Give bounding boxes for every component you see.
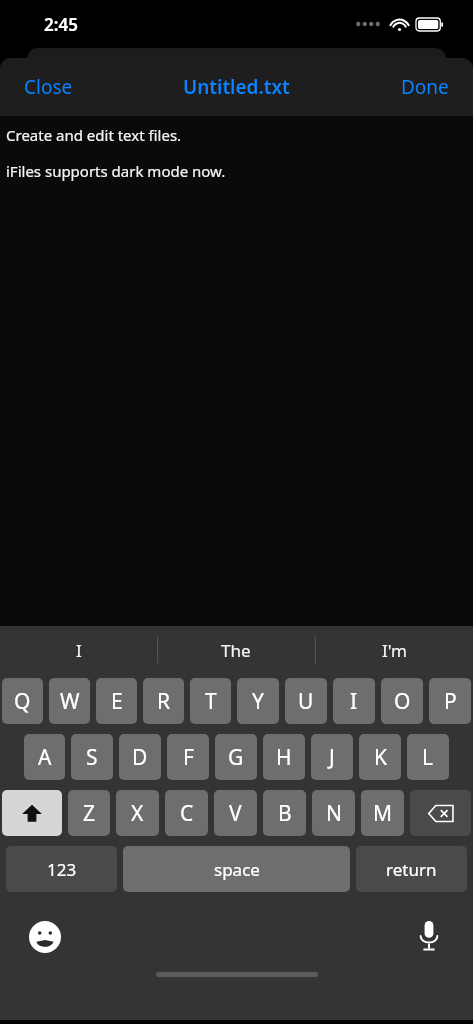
button[interactable]: B [263, 790, 306, 836]
button[interactable]: Done [377, 64, 473, 110]
button[interactable]: E [96, 678, 137, 724]
staticText: 123 [47, 858, 77, 881]
staticText: Y [252, 687, 264, 716]
staticText: C [180, 799, 194, 828]
staticText: V [229, 799, 242, 828]
staticText: 2:45 [44, 13, 78, 36]
button[interactable]: X [116, 790, 159, 836]
button[interactable]: Emoji [24, 916, 66, 958]
button[interactable]: M [361, 790, 404, 836]
staticText: return [386, 858, 437, 881]
button[interactable]: R [143, 678, 184, 724]
button[interactable]: V [214, 790, 257, 836]
staticText: D [132, 743, 148, 772]
staticText: B [278, 799, 292, 828]
staticText: space [214, 858, 260, 881]
staticText: N [326, 799, 342, 828]
button[interactable]: F [167, 734, 209, 780]
staticText: M [373, 799, 393, 828]
button[interactable]: D [119, 734, 161, 780]
staticText: O [394, 687, 411, 716]
button[interactable]: The [157, 626, 315, 674]
button[interactable]: N [312, 790, 355, 836]
button[interactable]: Shift [2, 790, 62, 836]
button[interactable]: Z [68, 790, 110, 836]
staticText: Close [24, 74, 73, 100]
staticText: iFiles supports dark mode now. [6, 161, 226, 181]
button[interactable]: J [311, 734, 353, 780]
button[interactable]: A [24, 734, 65, 780]
button[interactable]: I [333, 678, 375, 724]
button[interactable]: W [49, 678, 90, 724]
button[interactable]: Q [2, 678, 43, 724]
staticText: S [86, 743, 98, 772]
button[interactable]: Dictation [407, 914, 451, 958]
staticText: W [60, 687, 80, 716]
staticText: L [422, 743, 434, 772]
button[interactable]: O [381, 678, 423, 724]
staticText: R [157, 687, 171, 716]
button[interactable]: I'm [315, 626, 473, 674]
button[interactable]: H [263, 734, 305, 780]
button[interactable]: S [71, 734, 113, 780]
staticText: U [298, 687, 314, 716]
staticText: K [374, 743, 387, 772]
staticText: I [350, 687, 358, 716]
button[interactable]: I [0, 626, 157, 674]
button[interactable]: P [429, 678, 471, 724]
staticText: F [183, 743, 194, 772]
button[interactable]: L [407, 734, 449, 780]
button[interactable]: T [190, 678, 231, 724]
staticText: I'm [382, 639, 407, 662]
button[interactable]: Backspace [410, 790, 471, 836]
staticText: I [76, 639, 82, 662]
staticText: H [276, 743, 292, 772]
button[interactable]: C [165, 790, 208, 836]
staticText: J [329, 743, 335, 772]
button[interactable]: return [356, 846, 467, 892]
button[interactable]: space [123, 846, 350, 892]
staticText: The [221, 639, 251, 662]
button[interactable]: U [285, 678, 327, 724]
staticText: P [444, 687, 457, 716]
staticText: X [131, 799, 144, 828]
staticText: G [228, 743, 244, 772]
staticText: Z [83, 799, 96, 828]
button[interactable]: K [359, 734, 401, 780]
staticText: T [205, 687, 217, 716]
button[interactable]: G [215, 734, 257, 780]
staticText: Done [401, 74, 449, 100]
staticText: Untitled.txt [183, 74, 290, 100]
staticText: A [38, 743, 52, 772]
button[interactable]: Y [237, 678, 279, 724]
button[interactable]: Close [0, 64, 97, 110]
staticText: E [111, 687, 123, 716]
staticText: Create and edit text files. [6, 125, 182, 145]
staticText: Q [14, 687, 31, 716]
button[interactable]: 123 [6, 846, 117, 892]
